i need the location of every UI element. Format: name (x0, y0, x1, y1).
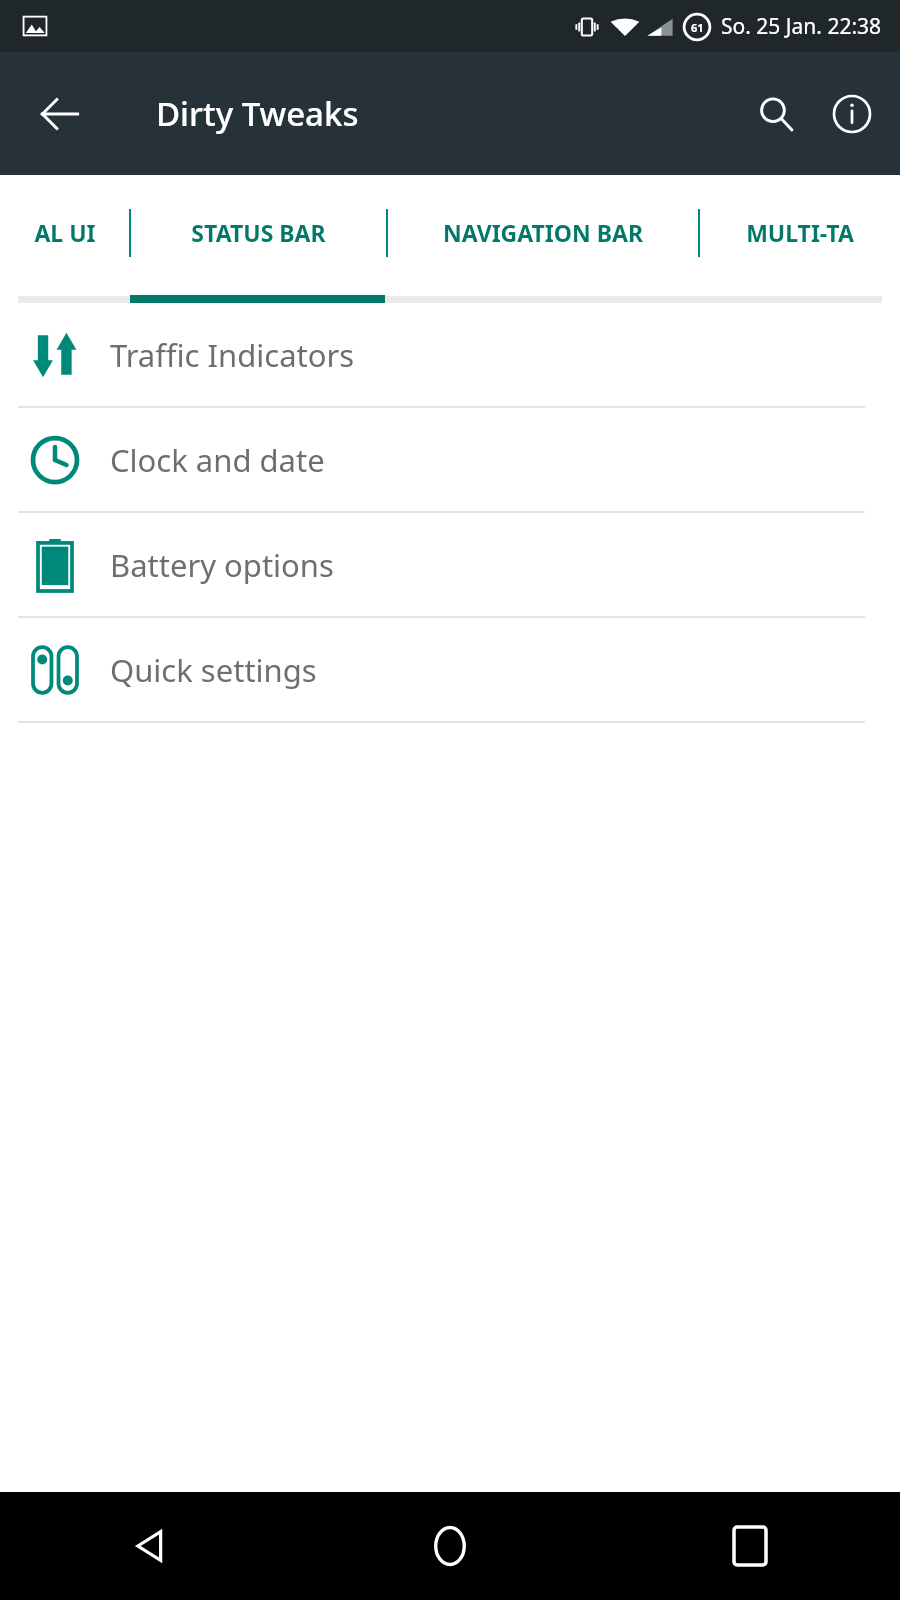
staticText: Quick settings (110, 649, 317, 691)
button[interactable]: Clock and date (0, 408, 900, 511)
button[interactable]: Quick settings (0, 618, 900, 721)
staticText: 61 (691, 20, 704, 35)
button[interactable]: Battery options (0, 513, 900, 616)
staticText: Clock and date (110, 439, 325, 481)
button[interactable]: STATUS BAR (131, 175, 386, 290)
staticText: Battery options (110, 544, 334, 586)
button[interactable]: Search (738, 76, 814, 152)
button[interactable]: Back (0, 1492, 300, 1600)
button[interactable]: Home (300, 1492, 600, 1600)
staticText: Traffic Indicators (110, 334, 355, 376)
staticText: STATUS BAR (191, 217, 326, 248)
button[interactable]: MULTI-TA (700, 175, 900, 290)
staticText: NAVIGATION BAR (443, 217, 643, 248)
button[interactable]: Info (814, 76, 890, 152)
button[interactable]: Traffic Indicators (0, 303, 900, 406)
staticText: AL UI (34, 217, 96, 248)
staticText: Dirty Tweaks (156, 91, 359, 136)
button[interactable]: Back (22, 76, 98, 152)
button[interactable]: Recent apps (600, 1492, 900, 1600)
staticText: MULTI-TA (746, 217, 854, 248)
staticText: So. 25 Jan. 22:38 (721, 12, 882, 41)
button[interactable]: AL UI (0, 175, 129, 290)
button[interactable]: NAVIGATION BAR (388, 175, 698, 290)
